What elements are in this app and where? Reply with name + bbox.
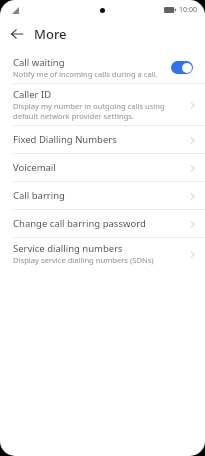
button[interactable]: Caller ID <box>0 84 205 125</box>
button[interactable]: Call barring <box>0 182 205 209</box>
button[interactable]: Back <box>6 23 28 45</box>
staticText: Service dialling numbers <box>13 242 123 255</box>
staticText: 10:00 <box>179 5 197 15</box>
button[interactable]: Service dialling numbers <box>0 238 205 269</box>
button[interactable]: Voicemail <box>0 154 205 181</box>
staticText: Voicemail <box>13 161 56 174</box>
staticText: Change call barring password <box>13 217 146 230</box>
button[interactable]: Fixed Dialling Numbers <box>0 126 205 153</box>
staticText: More <box>34 25 67 43</box>
staticText: Display service dialling numbers (SDNs) <box>13 255 154 265</box>
button[interactable]: Change call barring password <box>0 210 205 237</box>
button[interactable]: Call waiting <box>0 52 205 83</box>
staticText: Call barring <box>13 189 65 202</box>
staticText: Caller ID <box>13 88 52 101</box>
staticText: Display my number in outgoing calls usin… <box>13 101 185 121</box>
staticText: Notify me of incoming calls during a cal… <box>13 69 158 79</box>
button[interactable]: Call waiting <box>171 61 193 74</box>
staticText: Fixed Dialling Numbers <box>13 133 117 146</box>
staticText: Call waiting <box>13 56 65 69</box>
